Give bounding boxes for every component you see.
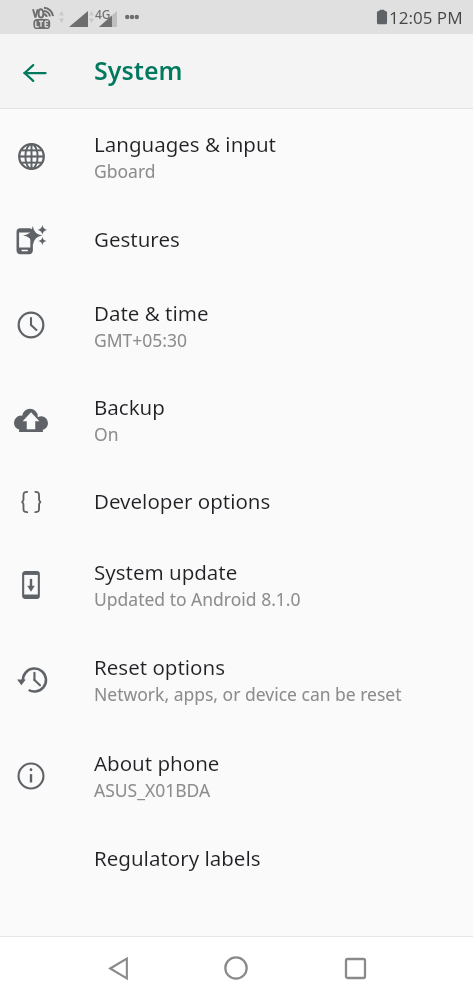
- button[interactable]: About phone: [0, 728, 473, 823]
- staticText: About phone: [94, 749, 220, 777]
- button[interactable]: Developer options: [0, 466, 473, 537]
- button[interactable]: Regulatory labels: [0, 823, 473, 896]
- button[interactable]: Navigate up: [9, 47, 61, 99]
- staticText: ASUS_X01BDA: [94, 778, 211, 802]
- staticText: Date & time: [94, 299, 209, 327]
- staticText: On: [94, 422, 119, 446]
- staticText: Gestures: [94, 225, 180, 253]
- staticText: Languages & input: [94, 130, 276, 158]
- button[interactable]: Languages & input: [0, 109, 473, 204]
- button[interactable]: Reset options: [0, 632, 473, 728]
- button[interactable]: Recent apps: [325, 937, 385, 999]
- staticText: Regulatory labels: [94, 844, 261, 872]
- staticText: GMT+05:30: [94, 328, 188, 352]
- button[interactable]: Date & time: [0, 278, 473, 372]
- staticText: 12:05 PM: [389, 6, 463, 29]
- staticText: System update: [94, 558, 238, 586]
- button[interactable]: System update: [0, 537, 473, 632]
- staticText: Reset options: [94, 653, 226, 681]
- button[interactable]: Gestures: [0, 204, 473, 278]
- button[interactable]: Backup: [0, 372, 473, 466]
- staticText: System: [94, 53, 183, 87]
- staticText: Gboard: [94, 159, 156, 183]
- staticText: Updated to Android 8.1.0: [94, 587, 301, 611]
- staticText: Backup: [94, 393, 165, 421]
- button[interactable]: Home: [206, 937, 266, 999]
- staticText: 4G: [95, 6, 111, 22]
- staticText: Developer options: [94, 487, 271, 515]
- staticText: Network, apps, or device can be reset: [94, 682, 402, 706]
- button[interactable]: Back: [88, 937, 148, 999]
